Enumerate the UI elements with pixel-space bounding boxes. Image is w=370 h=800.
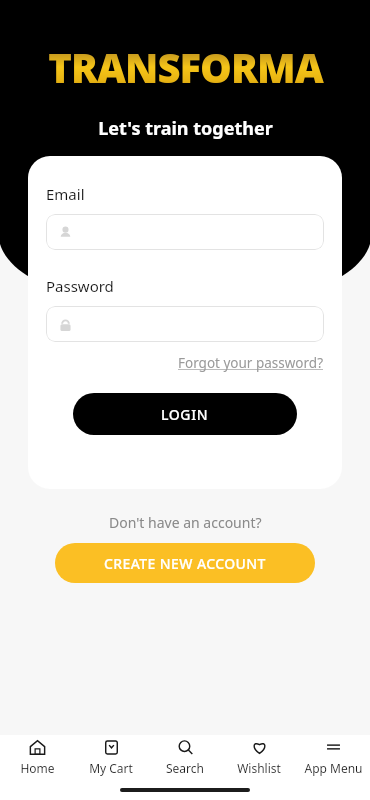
staticText: Let's train together — [98, 116, 273, 141]
button[interactable]: CREATE NEW ACCOUNT — [55, 543, 315, 583]
staticText: Forgot your password? — [178, 354, 324, 372]
staticText: My Cart — [89, 760, 133, 776]
staticText: Email — [46, 184, 85, 204]
button[interactable]: Search — [148, 735, 222, 780]
button[interactable]: Home — [0, 735, 74, 780]
staticText: CREATE NEW ACCOUNT — [104, 554, 266, 573]
button[interactable]: App Menu — [296, 735, 370, 780]
staticText: App Menu — [304, 760, 363, 776]
button[interactable]: Wishlist — [222, 735, 296, 780]
staticText: Don't have an account? — [109, 513, 262, 532]
staticText: Wishlist — [237, 760, 281, 776]
staticText: TRANSFORMA — [48, 40, 323, 94]
button[interactable] — [46, 214, 324, 250]
staticText: Password — [46, 276, 114, 296]
button[interactable]: LOGIN — [73, 393, 297, 435]
button[interactable]: My Cart — [74, 735, 148, 780]
button[interactable]: Forgot your password? — [178, 352, 324, 374]
button[interactable] — [46, 306, 324, 342]
staticText: Search — [166, 760, 204, 776]
staticText: Home — [20, 760, 55, 776]
staticText: LOGIN — [161, 405, 209, 424]
